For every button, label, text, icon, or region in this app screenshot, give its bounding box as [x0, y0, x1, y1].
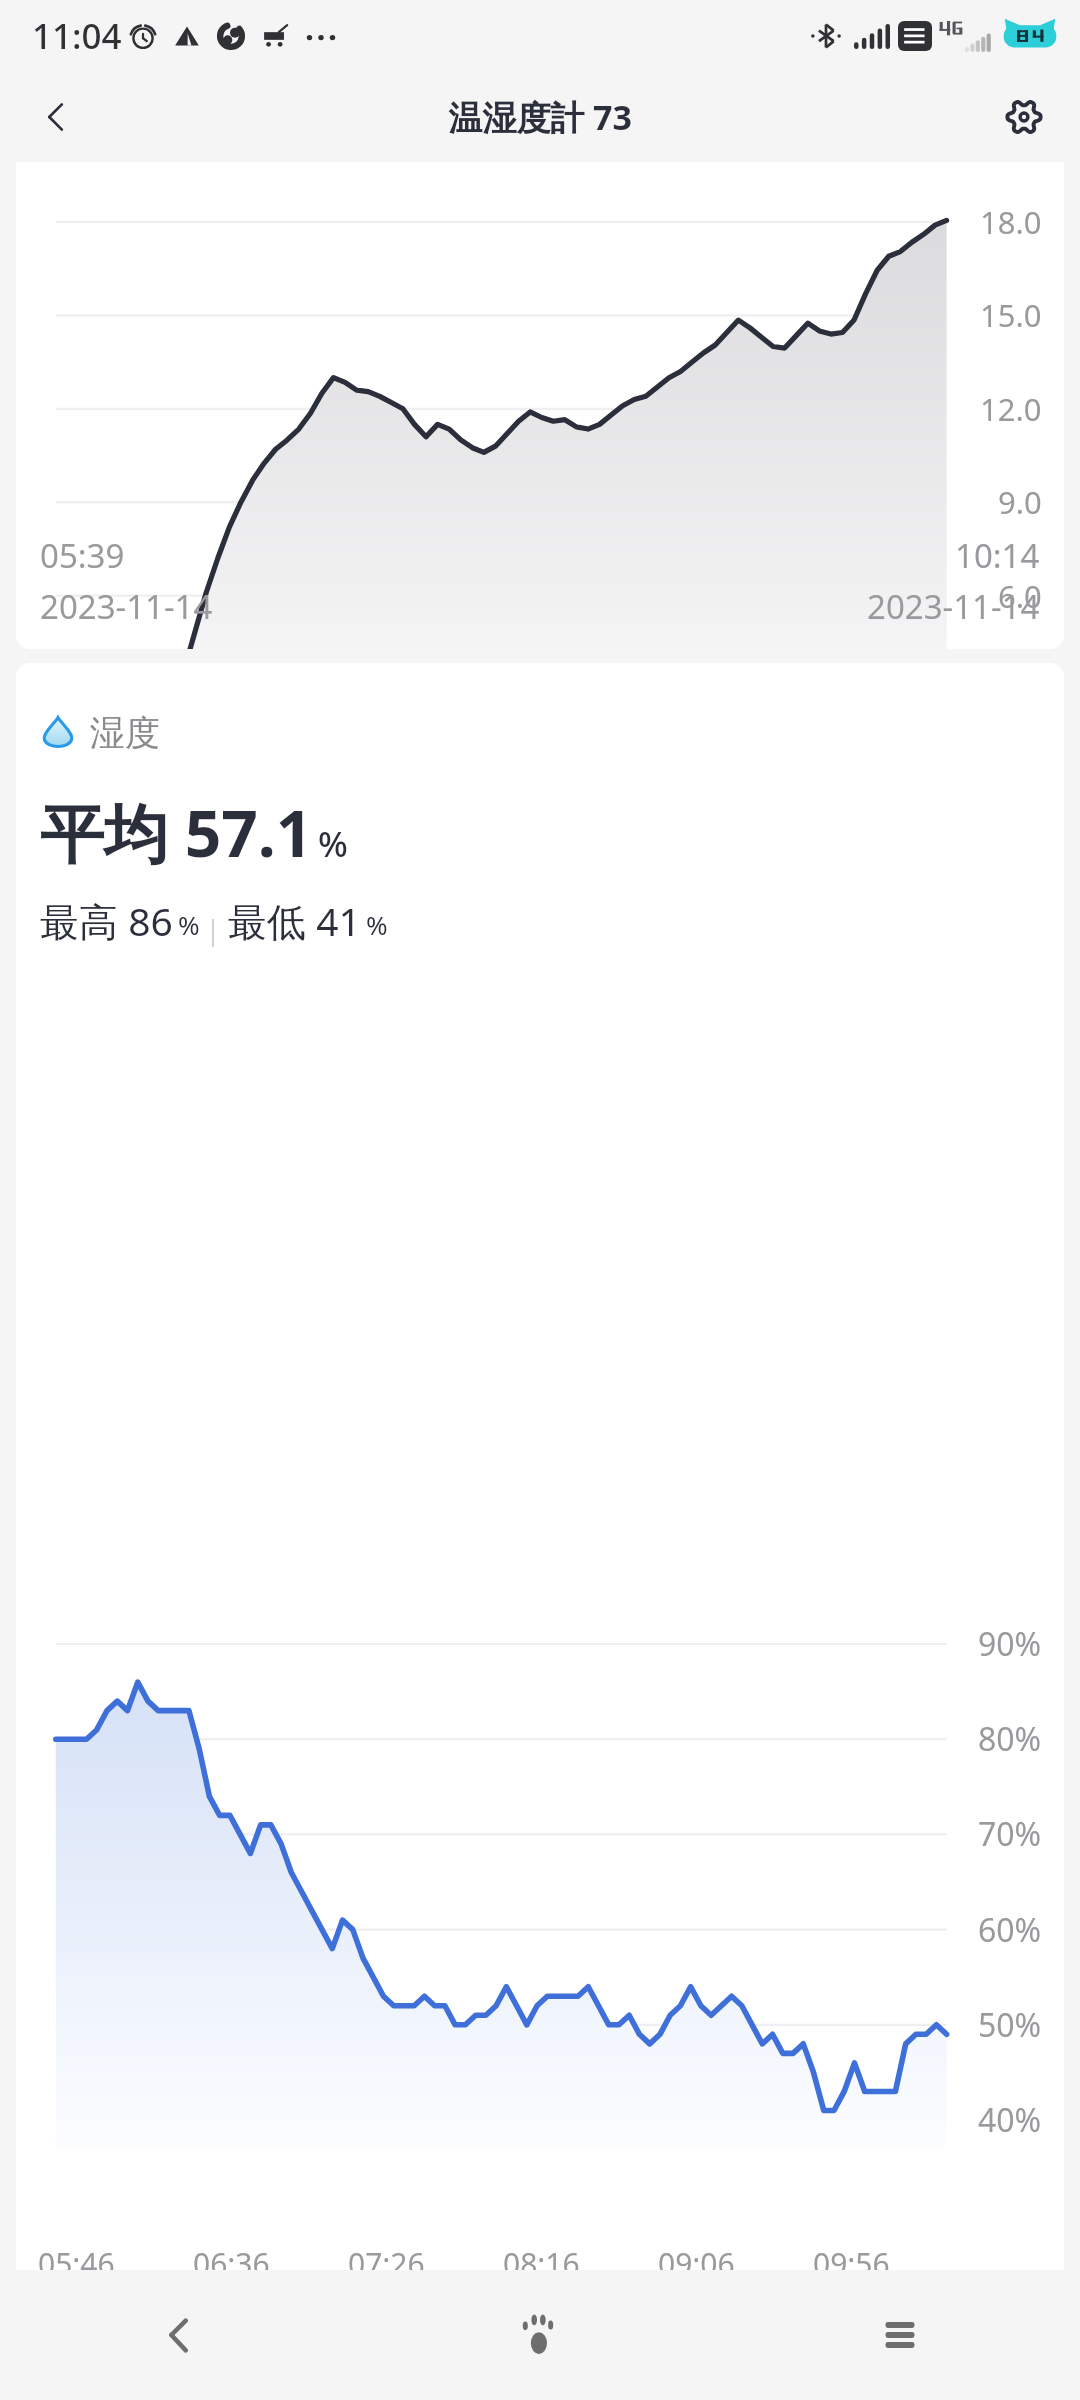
staticText: 40% [978, 2098, 1042, 2142]
button[interactable]: Recent apps [720, 2270, 1080, 2400]
staticText: 9.0 [998, 481, 1042, 523]
staticText: 2023-11-14 [867, 584, 1040, 629]
staticText: 最低 41 [228, 894, 361, 947]
button[interactable]: Settings [986, 79, 1062, 155]
staticText: 12.0 [980, 388, 1042, 430]
staticText: 湿度 [90, 711, 160, 755]
staticText: 80% [978, 1717, 1042, 1761]
button[interactable]: Back [18, 79, 94, 155]
staticText: 15.0 [980, 294, 1042, 336]
staticText: 50% [978, 2003, 1042, 2047]
staticText: 11:04 [32, 12, 122, 60]
staticText: 10:14 [955, 533, 1040, 578]
staticText: 2023-11-14 [40, 584, 213, 629]
staticText: 60% [978, 1908, 1042, 1952]
staticText: 70% [978, 1812, 1042, 1856]
staticText: 06:36 [193, 2243, 270, 2270]
staticText: 6.0 [998, 575, 1042, 617]
staticText: 最高 86 [40, 894, 173, 947]
button[interactable]: 18.0 [16, 162, 1064, 649]
button[interactable]: Back [0, 2270, 360, 2400]
staticText: % [366, 907, 388, 942]
staticText: % [318, 820, 348, 868]
staticText: 09:06 [658, 2243, 735, 2270]
staticText: % [178, 907, 200, 942]
staticText: 09:56 [813, 2243, 890, 2270]
button[interactable]: 湿度 [16, 663, 1064, 2270]
button[interactable]: Home [360, 2270, 720, 2400]
staticText: 05:46 [38, 2243, 115, 2270]
staticText: 90% [978, 1622, 1042, 1666]
staticText: 温湿度計 73 [448, 94, 632, 140]
staticText: 平均 57.1 [40, 789, 313, 876]
staticText: 05:39 [40, 533, 125, 578]
staticText: 08:16 [503, 2243, 580, 2270]
staticText: 18.0 [980, 201, 1042, 243]
staticText: 07:26 [348, 2243, 425, 2270]
